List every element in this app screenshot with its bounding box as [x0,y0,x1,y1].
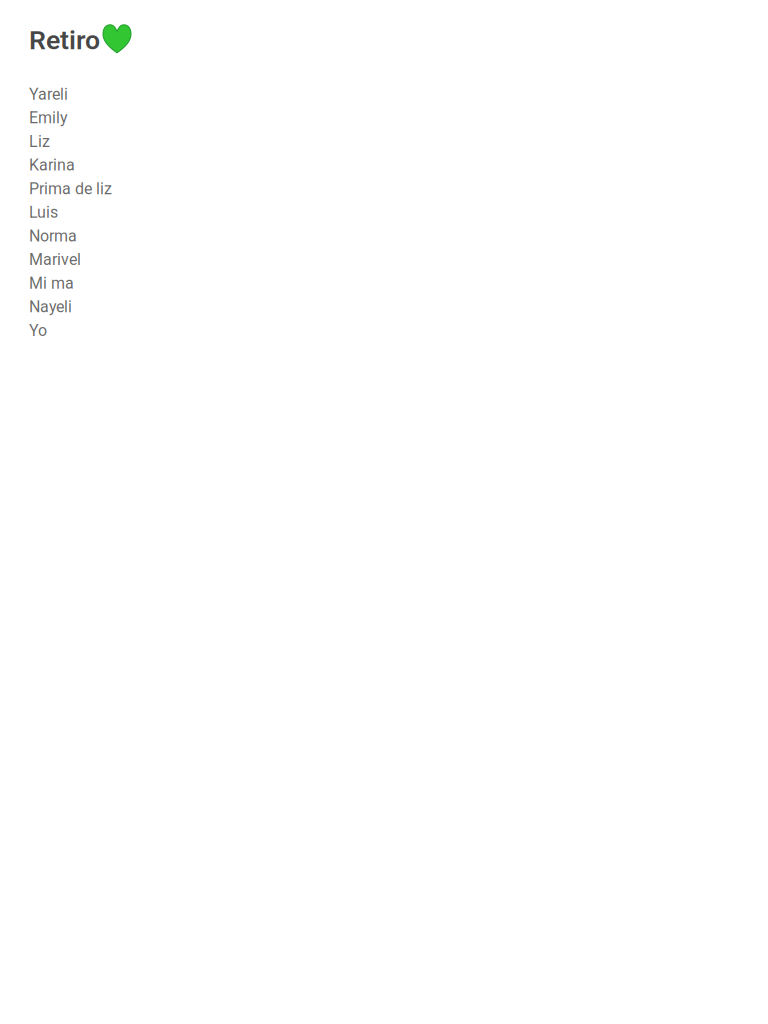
staticText: Yareli [29,85,68,104]
button[interactable]: Liz [29,132,739,151]
button[interactable]: Norma [29,227,739,245]
button[interactable]: Nayeli [29,297,739,316]
button[interactable]: Mi ma [29,274,739,293]
staticText: Prima de liz [29,179,112,198]
button[interactable]: Prima de liz [29,179,739,198]
button[interactable]: Emily [29,108,739,127]
staticText: Liz [29,132,50,151]
staticText: Yo [29,321,47,340]
staticText: Emily [29,108,68,127]
staticText: Karina [29,156,75,174]
button[interactable]: Karina [29,156,739,174]
staticText: Nayeli [29,297,72,316]
staticText: Norma [29,227,77,245]
staticText: Retiro [29,24,100,56]
button[interactable]: Yo [29,321,739,340]
button[interactable]: Luis [29,203,739,222]
button[interactable]: Yareli [29,85,739,104]
staticText: Marivel [29,250,81,269]
button[interactable]: Marivel [29,250,739,269]
staticText: Luis [29,203,58,222]
staticText: Mi ma [29,274,74,293]
